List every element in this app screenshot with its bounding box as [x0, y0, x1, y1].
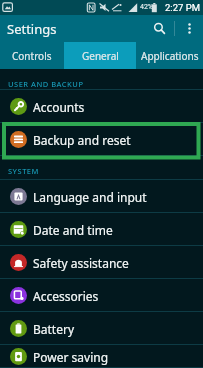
button[interactable]: Applications [136, 42, 203, 69]
button[interactable]: Controls [0, 42, 64, 69]
button[interactable]: Power saving [0, 345, 203, 368]
button[interactable]: Date and time [0, 213, 203, 246]
staticText: Language and input [33, 189, 147, 205]
staticText: 42% [140, 3, 153, 11]
button[interactable]: More options [175, 15, 203, 42]
staticText: SYSTEM [8, 166, 39, 176]
button[interactable]: Accounts [0, 90, 203, 123]
staticText: Power saving [33, 349, 109, 365]
staticText: USER AND BACKUP [8, 79, 84, 89]
staticText: Settings [7, 20, 57, 38]
button[interactable]: Safety assistance [0, 246, 203, 279]
staticText: Battery [33, 321, 75, 337]
button[interactable]: Backup and reset [0, 123, 203, 156]
button[interactable]: Search [144, 15, 174, 42]
button[interactable]: Accessories [0, 279, 203, 312]
button[interactable]: Language and input [0, 180, 203, 213]
staticText: Accessories [33, 288, 99, 304]
staticText: Safety assistance [33, 255, 129, 271]
staticText: Controls [12, 49, 52, 63]
staticText: Applications [141, 49, 199, 63]
button[interactable]: Battery [0, 312, 203, 345]
staticText: Accounts [33, 99, 85, 115]
staticText: Backup and reset [33, 132, 131, 148]
staticText: 2:27 PM [165, 2, 200, 13]
staticText: General [82, 49, 119, 63]
staticText: Date and time [33, 222, 113, 238]
button[interactable]: General [64, 42, 136, 69]
